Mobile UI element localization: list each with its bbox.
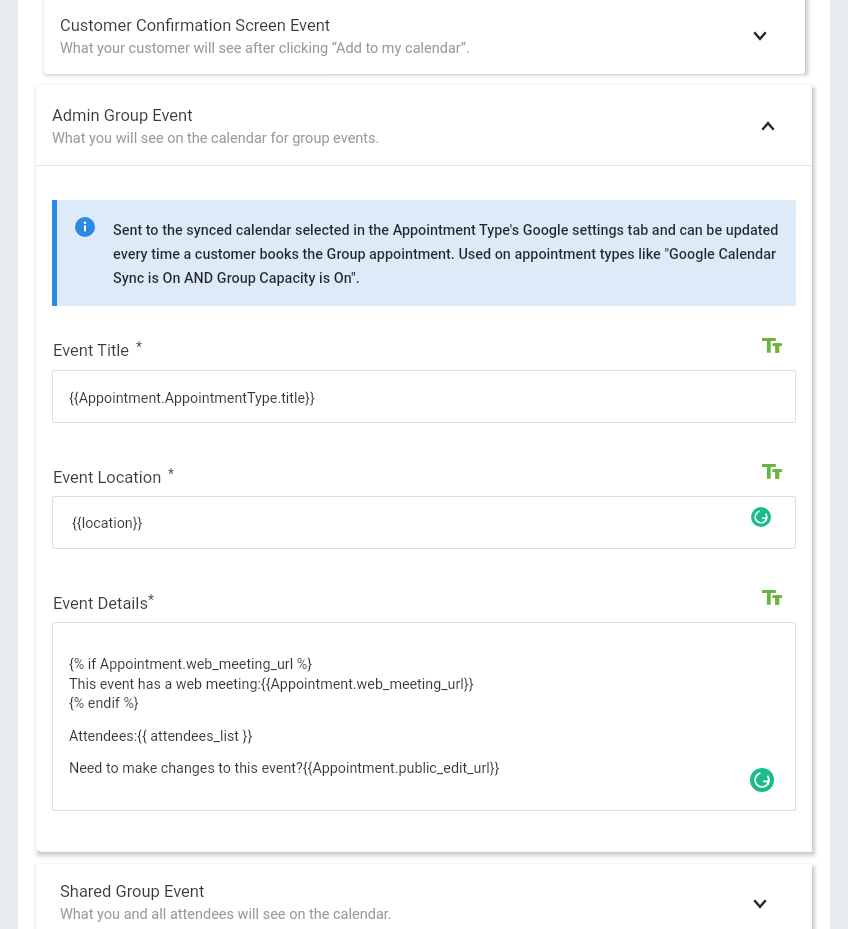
button[interactable]: Customer Confirmation Screen Event [44,0,805,74]
other: Expand [753,899,767,908]
staticText: This event has a web meeting:{{Appointme… [69,676,474,693]
staticText: Attendees:{{ attendees_list }} [69,728,253,745]
staticText: * [168,466,175,482]
button[interactable]: Admin Group Event [36,85,812,165]
staticText: * [148,592,155,608]
staticText: {% endif %} [69,695,139,712]
staticText: Admin Group Event [52,106,193,125]
other: Collapse [761,122,775,131]
staticText: What you and all attendees will see on t… [60,906,392,923]
staticText: {% if Appointment.web_meeting_url %} [69,656,312,673]
button[interactable]: Insert merge field [757,582,787,612]
staticText: {{location}} [72,515,143,532]
other: Expand [753,31,767,40]
button[interactable]: Reset to default [746,502,776,532]
staticText: Event Location [53,468,162,487]
staticText: Need to make changes to this event?{{App… [69,760,500,777]
staticText: What your customer will see after clicki… [60,40,470,57]
staticText: Event Details [53,594,148,613]
staticText: * [136,339,143,355]
staticText: What you will see on the calendar for gr… [52,130,380,147]
staticText: {{Appointment.AppointmentType.title}} [69,390,315,407]
button[interactable]: Shared Group Event [36,864,812,929]
staticText: Sent to the synced calendar selected in … [113,222,793,286]
button[interactable]: Insert merge field [757,330,787,360]
staticText: Shared Group Event [60,882,205,901]
button[interactable]: Insert merge field [757,456,787,486]
staticText: Event Title [53,341,130,360]
staticText: Customer Confirmation Screen Event [60,16,331,35]
button[interactable]: Reset to default [747,765,777,795]
